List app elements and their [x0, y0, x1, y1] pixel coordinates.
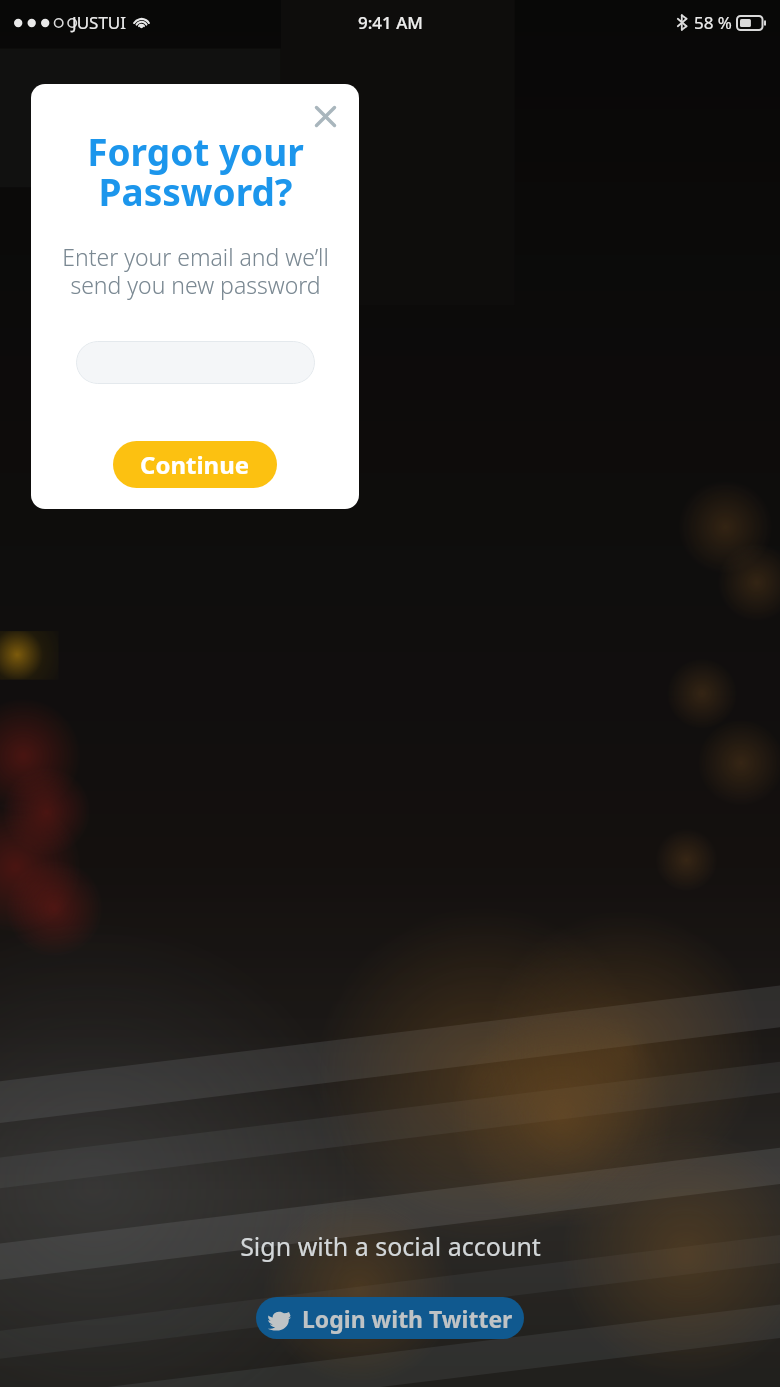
staticText: 9:41 AM	[358, 11, 423, 34]
staticText: Enter your email and we’ll send you new …	[62, 241, 329, 301]
staticText: Sign with a social account	[240, 1229, 541, 1263]
staticText: Continue	[140, 448, 250, 481]
button[interactable]: Email field	[76, 341, 315, 384]
button[interactable]: Continue	[113, 441, 277, 488]
staticText: Forgot your Password?	[87, 126, 304, 217]
staticText: 58 %	[694, 11, 732, 34]
button[interactable]: Login with Twitter	[256, 1297, 524, 1339]
staticText: JUSTUI	[72, 11, 127, 34]
button[interactable]: Close	[303, 94, 347, 138]
staticText: Login with Twitter	[302, 1303, 513, 1334]
